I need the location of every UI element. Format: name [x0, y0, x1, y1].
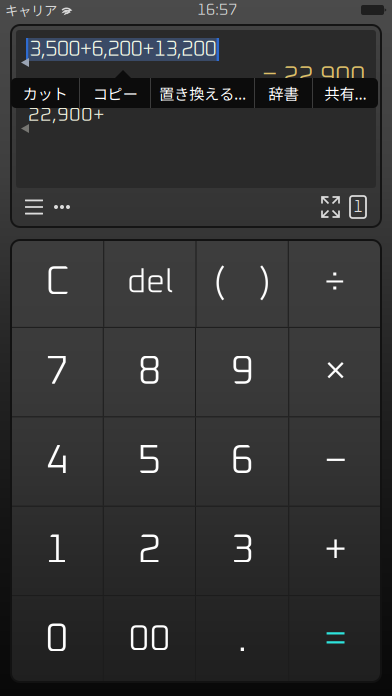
staticText: = [324, 620, 347, 660]
button[interactable]: C [11, 238, 103, 327]
button[interactable]: + [289, 507, 381, 595]
button[interactable]: 3 [196, 507, 288, 595]
button[interactable]: 4 [10, 417, 103, 506]
button[interactable]: 辞書 [255, 78, 312, 108]
staticText: 1 [45, 531, 68, 571]
button[interactable]: 9 [196, 328, 288, 416]
button[interactable]: Page 1 [345, 194, 371, 220]
staticText: 22,900+ [28, 105, 105, 125]
staticText: 5 [138, 441, 161, 481]
button[interactable]: 8 [104, 328, 195, 416]
staticText: ( [214, 264, 225, 301]
button[interactable]: More options [49, 194, 75, 220]
staticText: 3,500+6,200+13,200 [29, 39, 216, 60]
button[interactable]: ( [196, 238, 242, 327]
button[interactable]: 00 [104, 596, 195, 683]
staticText: 9 [231, 352, 254, 392]
button[interactable]: ÷ [289, 238, 381, 327]
staticText: 00 [128, 622, 170, 658]
staticText: 置き換える... [159, 82, 246, 104]
staticText: − [324, 441, 347, 481]
button[interactable]: Menu [19, 193, 49, 220]
button[interactable]: Full screen [316, 194, 345, 220]
staticText: 3 [231, 531, 254, 571]
button[interactable]: ) [242, 238, 288, 327]
button[interactable]: × [289, 328, 381, 416]
staticText: 16:57 [197, 2, 237, 18]
staticText: . [237, 620, 247, 660]
button[interactable]: カット [11, 78, 79, 108]
staticText: カット [22, 82, 67, 104]
button[interactable]: 1 [10, 507, 103, 595]
staticText: 4 [45, 441, 68, 481]
staticText: 辞書 [268, 82, 298, 104]
button[interactable]: 置き換える... [151, 78, 254, 108]
staticText: コピー [92, 82, 137, 104]
staticText: 6 [231, 441, 254, 481]
button[interactable]: コピー [80, 78, 150, 108]
staticText: C [45, 263, 69, 303]
button[interactable]: 0 [10, 596, 103, 683]
button[interactable]: 2 [104, 507, 195, 595]
button[interactable]: 5 [104, 417, 195, 506]
staticText: 0 [45, 620, 68, 660]
staticText: キャリア [5, 0, 57, 20]
staticText: 8 [138, 352, 161, 392]
button[interactable]: 6 [196, 417, 288, 506]
button[interactable]: . [196, 596, 288, 683]
staticText: 7 [45, 352, 68, 392]
staticText: 共有... [324, 82, 366, 104]
staticText: ÷ [324, 264, 346, 301]
button[interactable]: = [289, 596, 381, 683]
staticText: = 22,900 [262, 64, 365, 91]
staticText: 2 [138, 531, 161, 571]
button[interactable]: 共有... [313, 78, 378, 108]
staticText: ) [259, 264, 270, 301]
staticText: del [127, 266, 173, 299]
staticText: × [324, 352, 347, 392]
staticText: + [324, 531, 347, 571]
button[interactable]: del [104, 238, 195, 327]
button[interactable]: 7 [10, 328, 103, 416]
staticText: 1 [353, 198, 363, 216]
button[interactable]: − [289, 417, 381, 506]
